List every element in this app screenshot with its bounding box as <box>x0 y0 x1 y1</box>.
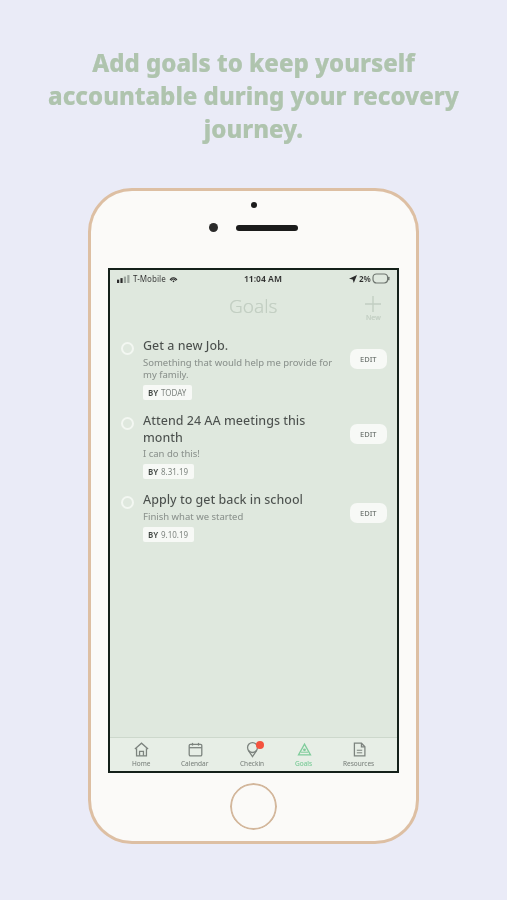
staticText: EDIT <box>360 429 377 439</box>
button[interactable]: Goals <box>287 740 321 770</box>
button[interactable]: Complete Attend 24 AA meetings this mont… <box>110 406 397 485</box>
staticText: 2% <box>359 273 371 284</box>
staticText: 11:04 AM <box>244 273 282 285</box>
button[interactable]: Resources <box>335 740 383 770</box>
staticText: Finish what we started <box>143 510 244 523</box>
staticText: BY <box>148 387 161 398</box>
staticText: 8.31.19 <box>161 466 189 477</box>
button[interactable]: EDIT <box>350 424 387 444</box>
staticText: Get a new Job. <box>143 337 229 354</box>
button[interactable]: Complete Apply to get back in school <box>121 496 134 509</box>
staticText: T-Mobile <box>133 273 166 284</box>
staticText: Attend 24 AA meetings this month <box>143 412 344 445</box>
button[interactable]: Home <box>124 740 159 770</box>
staticText: Checkin <box>240 759 265 768</box>
staticText: Home <box>132 759 151 768</box>
staticText: Resources <box>343 759 375 768</box>
button[interactable]: Calendar <box>173 740 217 770</box>
button[interactable]: Complete Get a new Job. <box>110 331 397 406</box>
staticText: BY <box>148 466 161 477</box>
staticText: Goals <box>295 759 313 768</box>
staticText: Calendar <box>181 759 209 768</box>
staticText: 9.10.19 <box>161 529 189 540</box>
staticText: Goals <box>229 293 278 319</box>
staticText: BY <box>148 529 161 540</box>
staticText: TODAY <box>161 387 187 398</box>
button[interactable]: Complete Get a new Job. <box>121 342 134 355</box>
button[interactable]: Complete Apply to get back in school <box>110 485 397 548</box>
button[interactable]: EDIT <box>350 503 387 523</box>
button[interactable]: Complete Attend 24 AA meetings this mont… <box>121 417 134 430</box>
staticText: Apply to get back in school <box>143 491 303 508</box>
button[interactable]: EDIT <box>350 349 387 369</box>
staticText: I can do this! <box>143 447 200 460</box>
staticText: EDIT <box>360 508 377 518</box>
staticText: Add goals to keep yourself accountable d… <box>22 46 485 145</box>
button[interactable]: Checkin <box>232 740 273 770</box>
button[interactable]: New goal <box>359 294 387 325</box>
staticText: Something that would help me provide for… <box>143 356 344 381</box>
staticText: New <box>366 313 381 323</box>
staticText: EDIT <box>360 354 377 364</box>
